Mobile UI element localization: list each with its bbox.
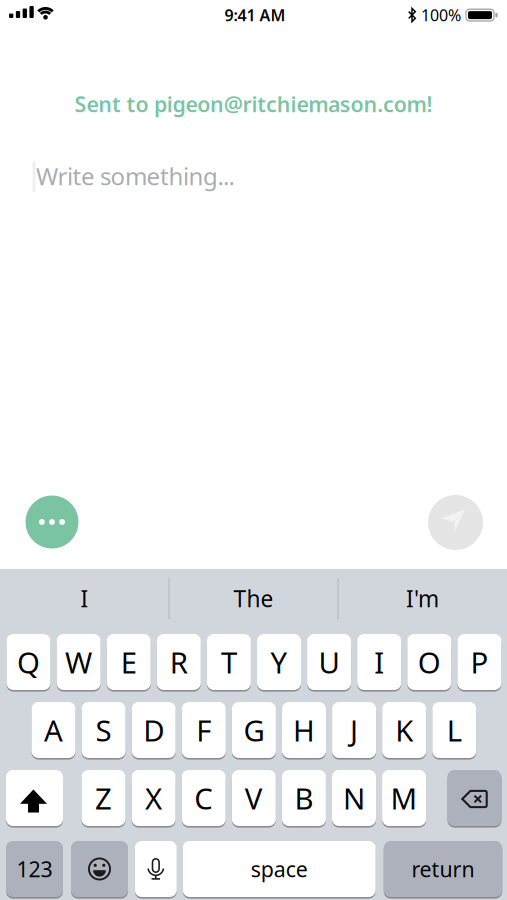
staticText: 9:41 AM [224, 4, 285, 26]
button[interactable]: R [157, 634, 201, 690]
staticText: L [447, 710, 462, 749]
staticText: Z [95, 778, 112, 817]
staticText: I [80, 583, 88, 613]
staticText: G [243, 710, 264, 749]
staticText: X [145, 778, 162, 817]
staticText: J [350, 710, 358, 749]
button[interactable]: I [0, 569, 168, 628]
button[interactable]: W [57, 634, 101, 690]
staticText: 100% [421, 4, 461, 26]
staticText: R [170, 642, 188, 681]
button[interactable]: B [282, 770, 326, 826]
button[interactable]: A [31, 702, 75, 758]
staticText: N [343, 778, 365, 817]
staticText: I'm [406, 583, 439, 613]
staticText: O [418, 642, 441, 681]
button[interactable]: Y [257, 634, 301, 690]
staticText: M [391, 778, 418, 817]
button[interactable]: D [132, 702, 176, 758]
button[interactable]: space [183, 841, 376, 897]
button[interactable]: L [432, 702, 476, 758]
button[interactable]: P [457, 634, 501, 690]
button[interactable]: E [107, 634, 151, 690]
button[interactable]: M [382, 770, 426, 826]
staticText: P [470, 642, 488, 681]
staticText: Write something... [36, 160, 234, 192]
staticText: K [395, 710, 413, 749]
staticText: F [196, 710, 211, 749]
staticText: S [96, 710, 112, 749]
staticText: W [65, 642, 92, 681]
staticText: 123 [16, 855, 52, 883]
button[interactable]: N [332, 770, 376, 826]
button[interactable] [6, 770, 63, 826]
button[interactable]: G [232, 702, 276, 758]
button[interactable] [135, 841, 177, 897]
button[interactable]: T [207, 634, 251, 690]
staticText: V [245, 778, 263, 817]
staticText: I [374, 642, 384, 681]
button[interactable]: X [132, 770, 176, 826]
button[interactable]: H [282, 702, 326, 758]
staticText: A [44, 710, 63, 749]
staticText: U [319, 642, 340, 681]
button[interactable]: F [182, 702, 226, 758]
button[interactable]: J [332, 702, 376, 758]
staticText: Q [17, 642, 40, 681]
staticText: space [251, 855, 308, 883]
staticText: Sent to pigeon@ritchiemason.com! [75, 90, 432, 118]
button[interactable]: return [384, 841, 502, 897]
staticText: E [121, 642, 137, 681]
button[interactable]: S [82, 702, 126, 758]
staticText: D [143, 710, 164, 749]
button[interactable]: Z [81, 770, 125, 826]
button[interactable]: 123 [6, 841, 63, 897]
button[interactable]: K [382, 702, 426, 758]
button[interactable] [25, 495, 78, 548]
staticText: H [293, 710, 315, 749]
button[interactable]: V [232, 770, 276, 826]
staticText: Y [270, 642, 287, 681]
staticText: B [294, 778, 313, 817]
button[interactable] [71, 841, 128, 897]
staticText: C [194, 778, 213, 817]
staticText: The [233, 583, 273, 613]
button[interactable]: The [169, 569, 337, 628]
button[interactable]: Q [6, 634, 50, 690]
button[interactable] [447, 770, 501, 826]
button[interactable]: U [307, 634, 351, 690]
staticText: return [411, 855, 474, 883]
staticText: T [221, 642, 237, 681]
button[interactable]: C [182, 770, 226, 826]
button[interactable]: O [407, 634, 451, 690]
button[interactable]: I'm [338, 569, 506, 628]
button[interactable]: I [357, 634, 401, 690]
button[interactable] [428, 495, 483, 550]
